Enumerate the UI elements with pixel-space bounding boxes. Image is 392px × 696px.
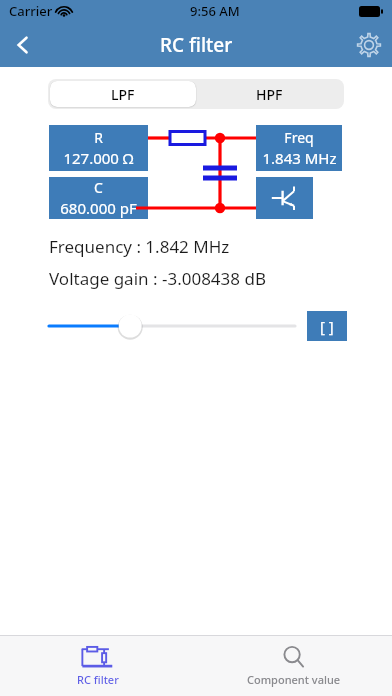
- button[interactable]: RC filter: [0, 645, 196, 687]
- button[interactable]: LPF: [50, 81, 196, 107]
- staticText: Voltage gain : -3.008438 dB: [49, 267, 266, 290]
- staticText: R: [94, 128, 103, 147]
- staticText: 680.000 pF: [60, 198, 137, 218]
- staticText: 9:56 AM: [190, 2, 240, 20]
- button[interactable]: HPF: [196, 81, 342, 107]
- staticText: HPF: [256, 85, 283, 104]
- button[interactable]: Freq: [256, 125, 342, 171]
- button[interactable]: Component value: [196, 645, 392, 687]
- staticText: Carrier: [9, 2, 53, 20]
- button[interactable]: R: [49, 125, 148, 171]
- staticText: C: [94, 178, 103, 197]
- staticText: Freq: [284, 128, 314, 147]
- staticText: 1.843 MHz: [262, 148, 337, 168]
- button[interactable]: Value slider: [49, 308, 295, 344]
- button[interactable]: Back: [0, 22, 46, 67]
- button[interactable]: C: [49, 177, 148, 219]
- staticText: [ ]: [320, 316, 334, 336]
- staticText: Component value: [247, 672, 341, 687]
- staticText: LPF: [111, 85, 135, 104]
- staticText: RC filter: [160, 32, 233, 58]
- staticText: Frequency : 1.842 MHz: [49, 235, 230, 258]
- staticText: 127.000 Ω: [63, 148, 134, 168]
- button[interactable]: [ ]: [307, 311, 347, 341]
- button[interactable]: Transistor: [256, 177, 313, 219]
- button[interactable]: Settings: [346, 22, 392, 67]
- staticText: RC filter: [77, 672, 119, 687]
